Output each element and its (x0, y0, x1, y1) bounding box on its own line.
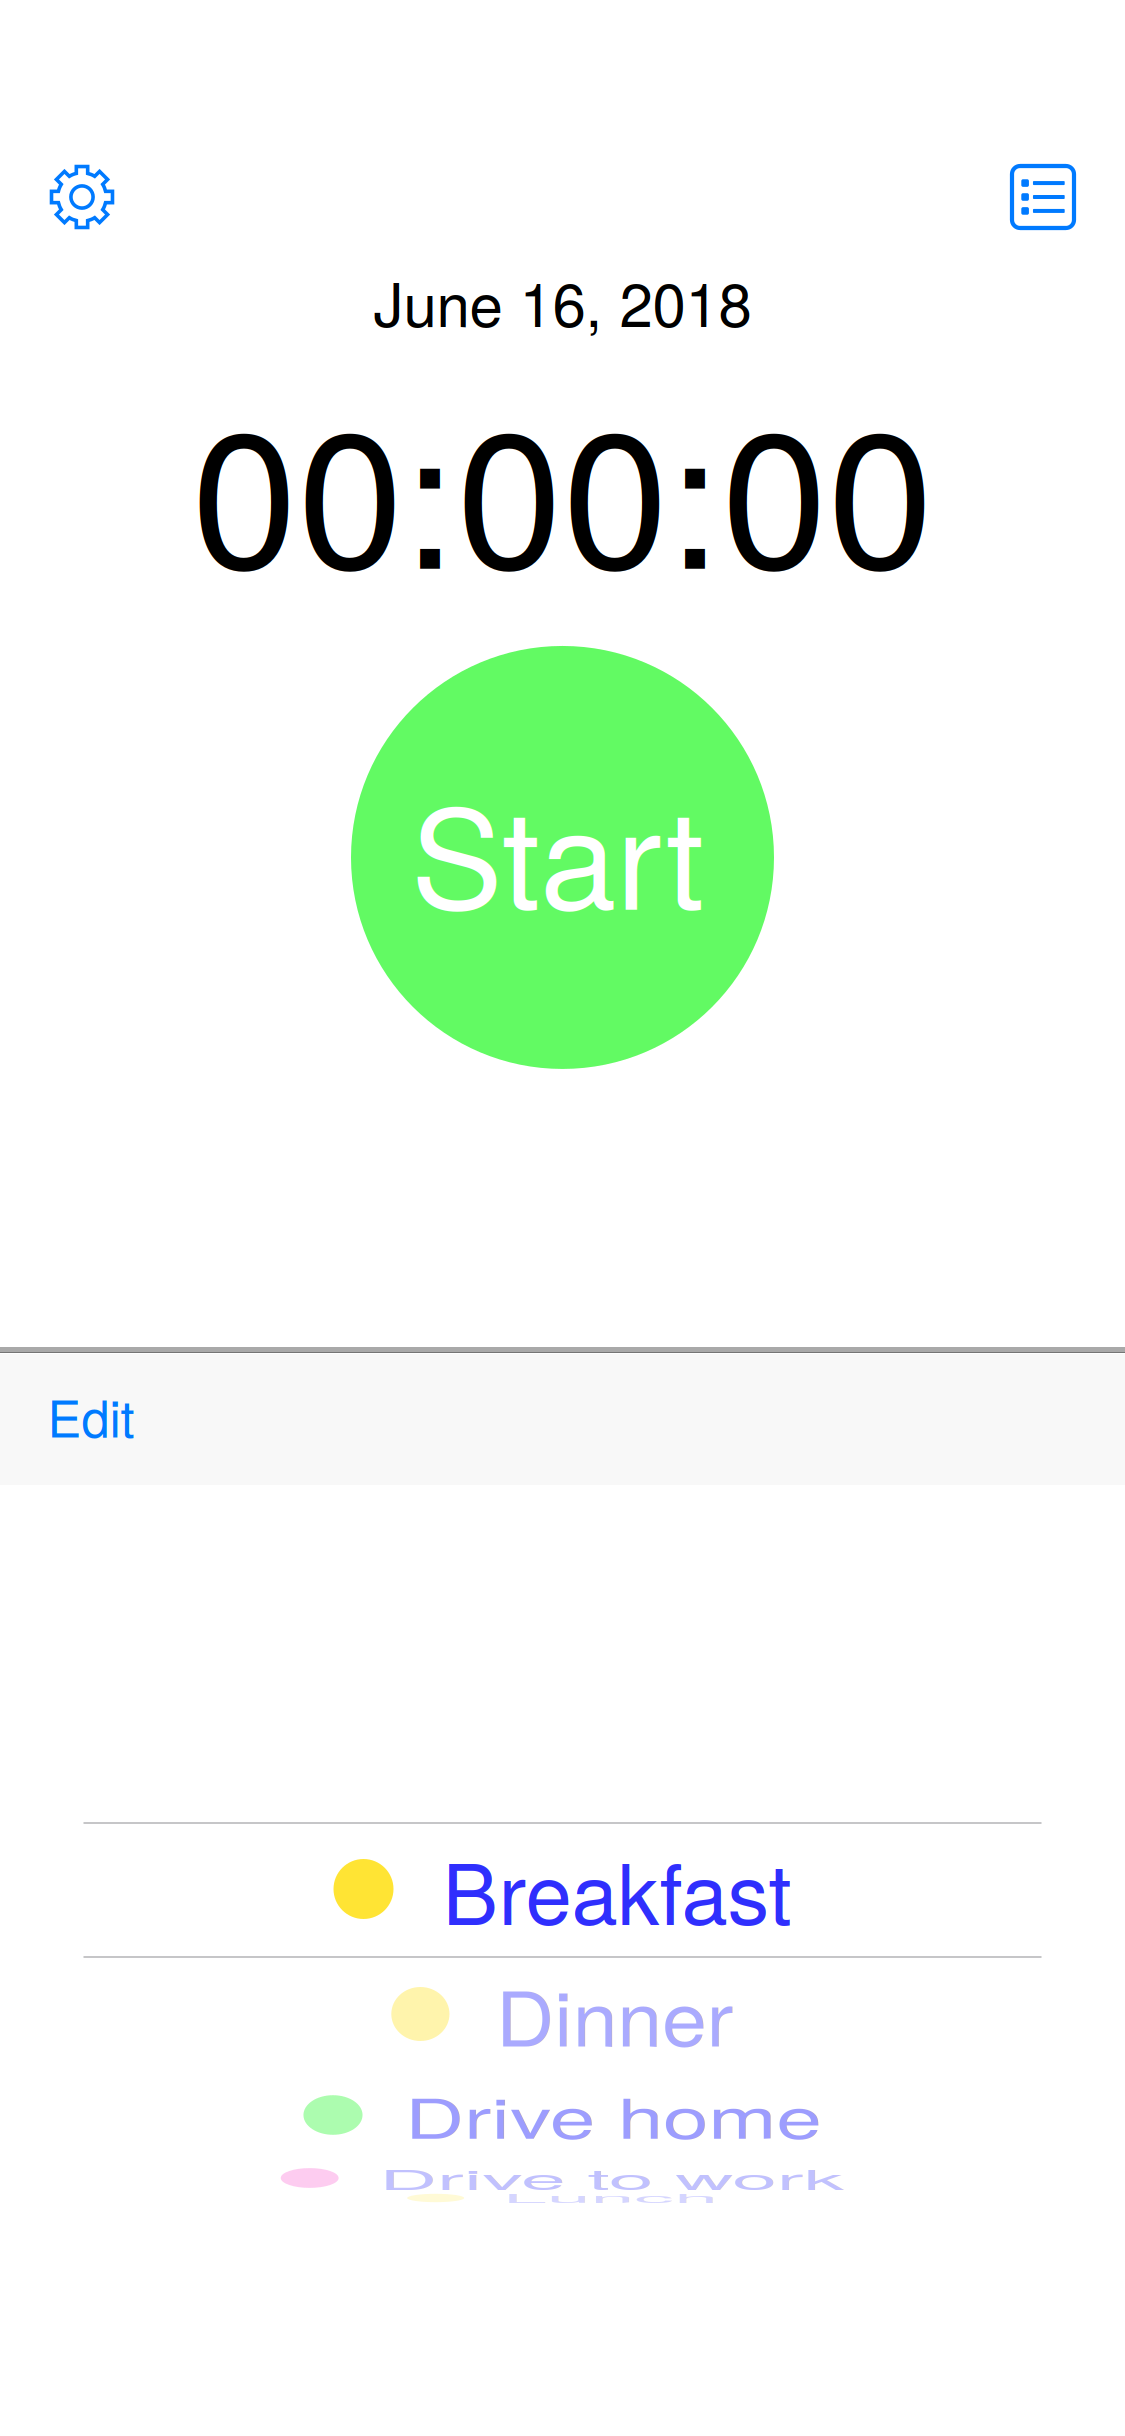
button[interactable]: Start (351, 646, 774, 1069)
staticText: Drive home (402, 2055, 825, 2175)
button[interactable]: Drive home (0, 2049, 1125, 2181)
staticText: 00:00:00 (191, 350, 933, 623)
button[interactable]: Drive to work (0, 2112, 1125, 2244)
staticText: Edit (47, 1379, 134, 1452)
button[interactable]: Dinner (0, 1948, 1125, 2080)
button[interactable]: Activity log (983, 147, 1103, 247)
staticText: Drive to work (372, 2118, 854, 2238)
staticText: Start (411, 752, 704, 949)
staticText: Lunch (500, 2138, 726, 2258)
button[interactable]: Lunch (0, 2132, 1125, 2264)
button[interactable]: Edit (23, 1354, 159, 1485)
button[interactable]: Settings (22, 147, 142, 247)
button[interactable]: Breakfast (0, 1823, 1125, 1955)
staticText: June 16, 2018 (373, 258, 751, 344)
staticText: Breakfast (442, 1829, 791, 1949)
staticText: Dinner (494, 1954, 739, 2074)
